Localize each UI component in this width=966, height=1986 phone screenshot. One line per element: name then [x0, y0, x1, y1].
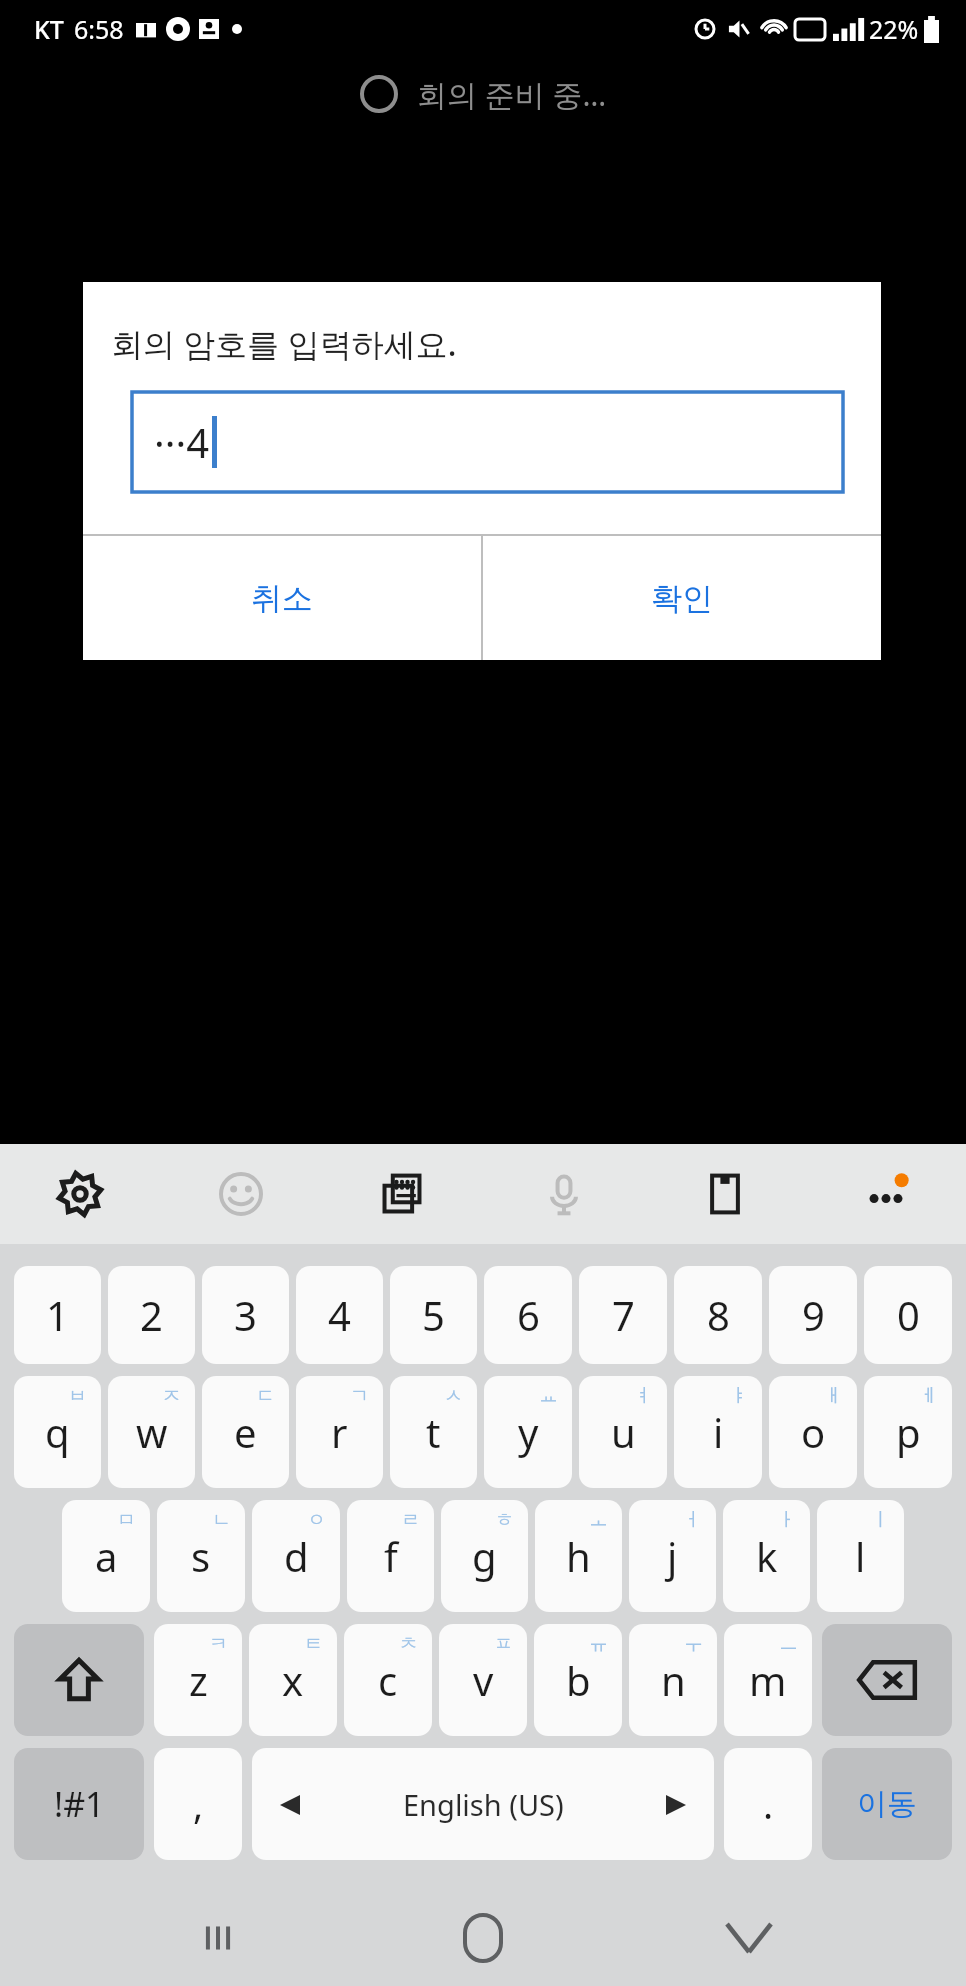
staticText: 5	[422, 1288, 445, 1342]
button[interactable]: g	[441, 1500, 528, 1612]
staticText: g	[472, 1529, 497, 1583]
staticText: ㅅ	[444, 1384, 463, 1408]
button[interactable]: Shift	[14, 1624, 144, 1736]
staticText: s	[191, 1529, 211, 1583]
staticText: ㅊ	[399, 1632, 418, 1656]
staticText: j	[667, 1529, 678, 1583]
button[interactable]: u	[579, 1376, 667, 1488]
staticText: 회의 암호를 입력하세요.	[111, 322, 457, 366]
staticText: ㅐ	[824, 1384, 843, 1408]
staticText: ㄴ	[212, 1508, 231, 1532]
button[interactable]: o	[769, 1376, 857, 1488]
button[interactable]: k	[723, 1500, 810, 1612]
button[interactable]: z	[154, 1624, 242, 1736]
button[interactable]: r	[296, 1376, 383, 1488]
button[interactable]: Voice input	[528, 1158, 600, 1230]
button[interactable]: 확인	[483, 536, 881, 660]
button[interactable]: English (US)	[252, 1748, 714, 1860]
staticText: ㅏ	[777, 1508, 796, 1532]
staticText: 9	[802, 1288, 825, 1342]
button[interactable]: 취소	[83, 536, 481, 660]
button[interactable]: n	[629, 1624, 717, 1736]
staticText: ···4	[154, 415, 210, 469]
button[interactable]: Keyboard modes	[366, 1158, 438, 1230]
staticText: ㅁ	[117, 1508, 136, 1532]
staticText: ㅜ	[684, 1632, 703, 1656]
button[interactable]: 2	[108, 1266, 195, 1364]
button[interactable]: p	[864, 1376, 952, 1488]
staticText: r	[331, 1405, 348, 1459]
button[interactable]: e	[202, 1376, 289, 1488]
staticText: ㅋ	[209, 1632, 228, 1656]
staticText: ㅠ	[589, 1632, 608, 1656]
button[interactable]: Hide keyboard	[701, 1890, 797, 1986]
button[interactable]: v	[439, 1624, 527, 1736]
button[interactable]: 9	[769, 1266, 857, 1364]
staticText: y	[518, 1405, 539, 1459]
staticText: e	[234, 1405, 257, 1459]
button[interactable]: x	[249, 1624, 337, 1736]
staticText: ㅔ	[919, 1384, 938, 1408]
button[interactable]: Settings	[44, 1158, 116, 1230]
button[interactable]: 6	[484, 1266, 572, 1364]
staticText: o	[801, 1405, 826, 1459]
button[interactable]: Emoji	[205, 1158, 277, 1230]
button[interactable]: 3	[202, 1266, 289, 1364]
button[interactable]: m	[724, 1624, 812, 1736]
button[interactable]: !#1	[14, 1748, 144, 1860]
staticText: b	[566, 1653, 591, 1707]
button[interactable]: 이동	[822, 1748, 952, 1860]
button[interactable]: 8	[674, 1266, 762, 1364]
button[interactable]: Home	[435, 1890, 531, 1986]
button[interactable]: ,	[154, 1748, 242, 1860]
button[interactable]: y	[484, 1376, 572, 1488]
staticText: ㅎ	[495, 1508, 514, 1532]
staticText: 2	[140, 1288, 163, 1342]
button[interactable]: .	[724, 1748, 812, 1860]
button[interactable]: q	[14, 1376, 101, 1488]
button[interactable]: f	[347, 1500, 434, 1612]
button[interactable]: a	[62, 1500, 150, 1612]
button[interactable]: Recents	[170, 1890, 266, 1986]
staticText: ㅌ	[304, 1632, 323, 1656]
button[interactable]: 0	[864, 1266, 952, 1364]
staticText: 6	[517, 1288, 540, 1342]
button[interactable]: d	[252, 1500, 340, 1612]
staticText: 회의 준비 중…	[417, 74, 607, 115]
button[interactable]: ···4	[132, 392, 843, 492]
staticText: ㅂ	[68, 1384, 87, 1408]
staticText: q	[45, 1405, 70, 1459]
button[interactable]: 5	[390, 1266, 477, 1364]
button[interactable]: w	[108, 1376, 195, 1488]
button[interactable]: s	[157, 1500, 245, 1612]
staticText: c	[378, 1653, 398, 1707]
staticText: ㄹ	[401, 1508, 420, 1532]
staticText: ㄷ	[256, 1384, 275, 1408]
button[interactable]: j	[629, 1500, 716, 1612]
button[interactable]: More options	[850, 1158, 922, 1230]
button[interactable]: 1	[14, 1266, 101, 1364]
button[interactable]: Backspace	[822, 1624, 952, 1736]
button[interactable]: 4	[296, 1266, 383, 1364]
button[interactable]: Clipboard	[689, 1158, 761, 1230]
staticText: n	[661, 1653, 686, 1707]
staticText: k	[756, 1529, 778, 1583]
button[interactable]: h	[535, 1500, 622, 1612]
staticText: !#1	[54, 1781, 105, 1827]
staticText: h	[566, 1529, 591, 1583]
staticText: 4	[328, 1288, 351, 1342]
staticText: ㅓ	[683, 1508, 702, 1532]
button[interactable]: i	[674, 1376, 762, 1488]
button[interactable]: b	[534, 1624, 622, 1736]
staticText: u	[611, 1405, 636, 1459]
button[interactable]: c	[344, 1624, 432, 1736]
staticText: ㅗ	[589, 1508, 608, 1532]
staticText: ㅣ	[871, 1508, 890, 1532]
staticText: ㅈ	[162, 1384, 181, 1408]
button[interactable]: t	[390, 1376, 477, 1488]
staticText: .	[763, 1778, 774, 1830]
button[interactable]: l	[817, 1500, 904, 1612]
staticText: l	[855, 1529, 866, 1583]
staticText: v	[473, 1653, 494, 1707]
button[interactable]: 7	[579, 1266, 667, 1364]
